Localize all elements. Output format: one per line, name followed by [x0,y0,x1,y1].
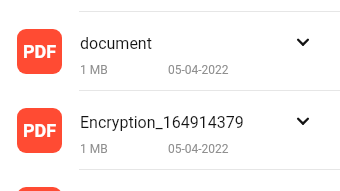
staticText: 05-04-2022 [168,63,229,77]
button[interactable]: PDF [0,11,340,90]
button[interactable]: PDF [0,169,340,191]
staticText: 1 MB [80,142,108,156]
staticText: PDF [23,120,57,141]
staticText: document [80,34,152,53]
button[interactable]: Expand file options [283,22,323,62]
button[interactable]: PDF [0,90,340,169]
staticText: PDF [23,41,57,62]
staticText: 05-04-2022 [168,142,229,156]
staticText: Encryption_164914379 [80,113,244,132]
staticText: 1 MB [80,63,108,77]
button[interactable]: Expand file options [283,101,323,141]
